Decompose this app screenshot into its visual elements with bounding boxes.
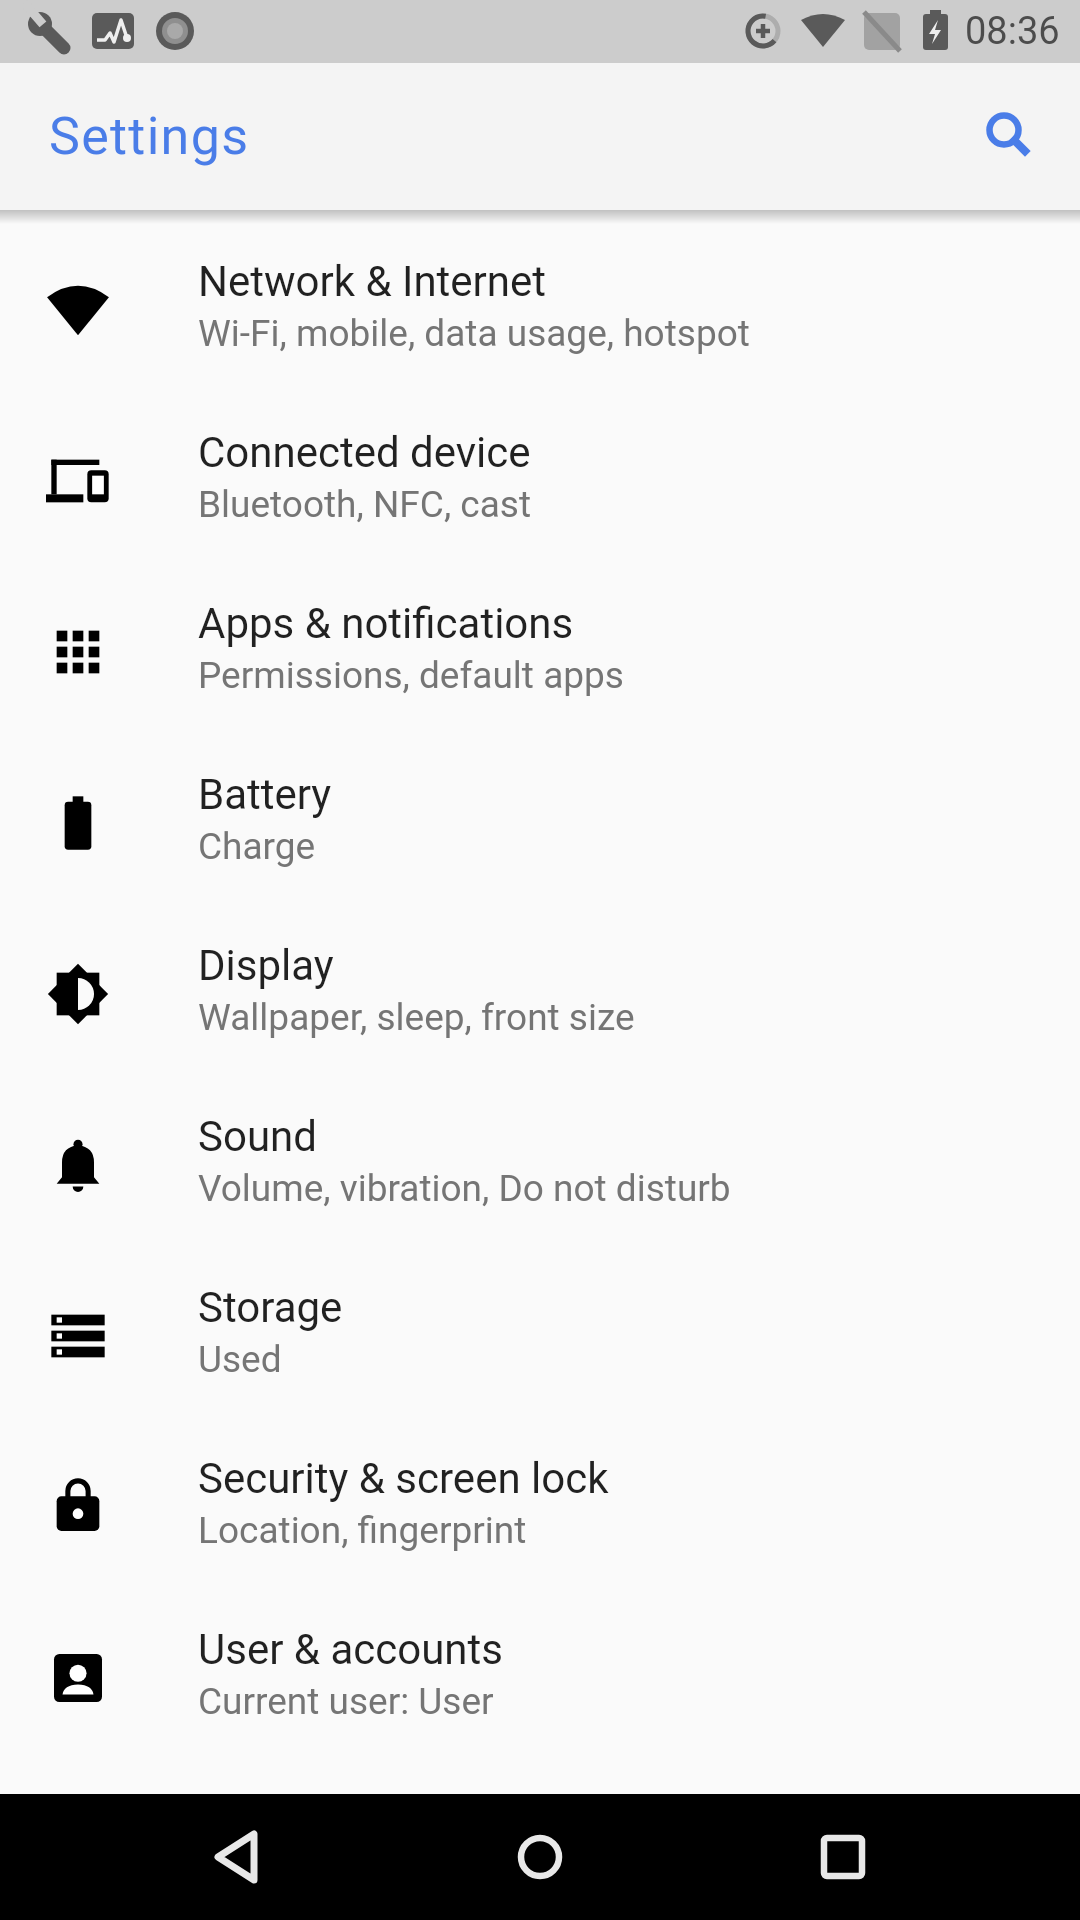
staticText: 08:36 (965, 9, 1060, 54)
staticText: Display (198, 941, 334, 990)
button[interactable]: Connected device (0, 395, 1080, 566)
staticText: Settings (49, 106, 250, 167)
button[interactable]: User & accounts (0, 1592, 1080, 1763)
button[interactable]: Battery (0, 737, 1080, 908)
staticText: Wallpaper, sleep, front size (198, 996, 635, 1039)
button[interactable]: Network & Internet (0, 224, 1080, 395)
staticText: Apps & notifications (198, 599, 574, 648)
button[interactable]: Storage (0, 1250, 1080, 1421)
staticText: Permissions, default apps (198, 654, 624, 697)
staticText: Current user: User (198, 1680, 494, 1723)
staticText: Wi-Fi, mobile, data usage, hotspot (198, 312, 750, 355)
staticText: Storage (198, 1283, 343, 1332)
button[interactable]: Display (0, 908, 1080, 1079)
button[interactable] (480, 1797, 600, 1917)
staticText: Charge (198, 825, 316, 868)
button[interactable]: Security & screen lock (0, 1421, 1080, 1592)
staticText: Connected device (198, 428, 531, 477)
staticText: User & accounts (198, 1625, 503, 1674)
staticText: Volume, vibration, Do not disturb (198, 1167, 731, 1210)
button[interactable]: Sound (0, 1079, 1080, 1250)
button[interactable]: Apps & notifications (0, 566, 1080, 737)
staticText: Used (198, 1338, 282, 1381)
staticText: Network & Internet (198, 257, 547, 306)
staticText: Bluetooth, NFC, cast (198, 483, 532, 526)
staticText: Battery (198, 770, 332, 819)
button[interactable] (980, 109, 1036, 165)
button[interactable] (176, 1797, 296, 1917)
staticText: Sound (198, 1112, 317, 1161)
staticText: Security & screen lock (198, 1454, 609, 1503)
staticText: Location, fingerprint (198, 1509, 527, 1552)
button[interactable] (783, 1797, 903, 1917)
